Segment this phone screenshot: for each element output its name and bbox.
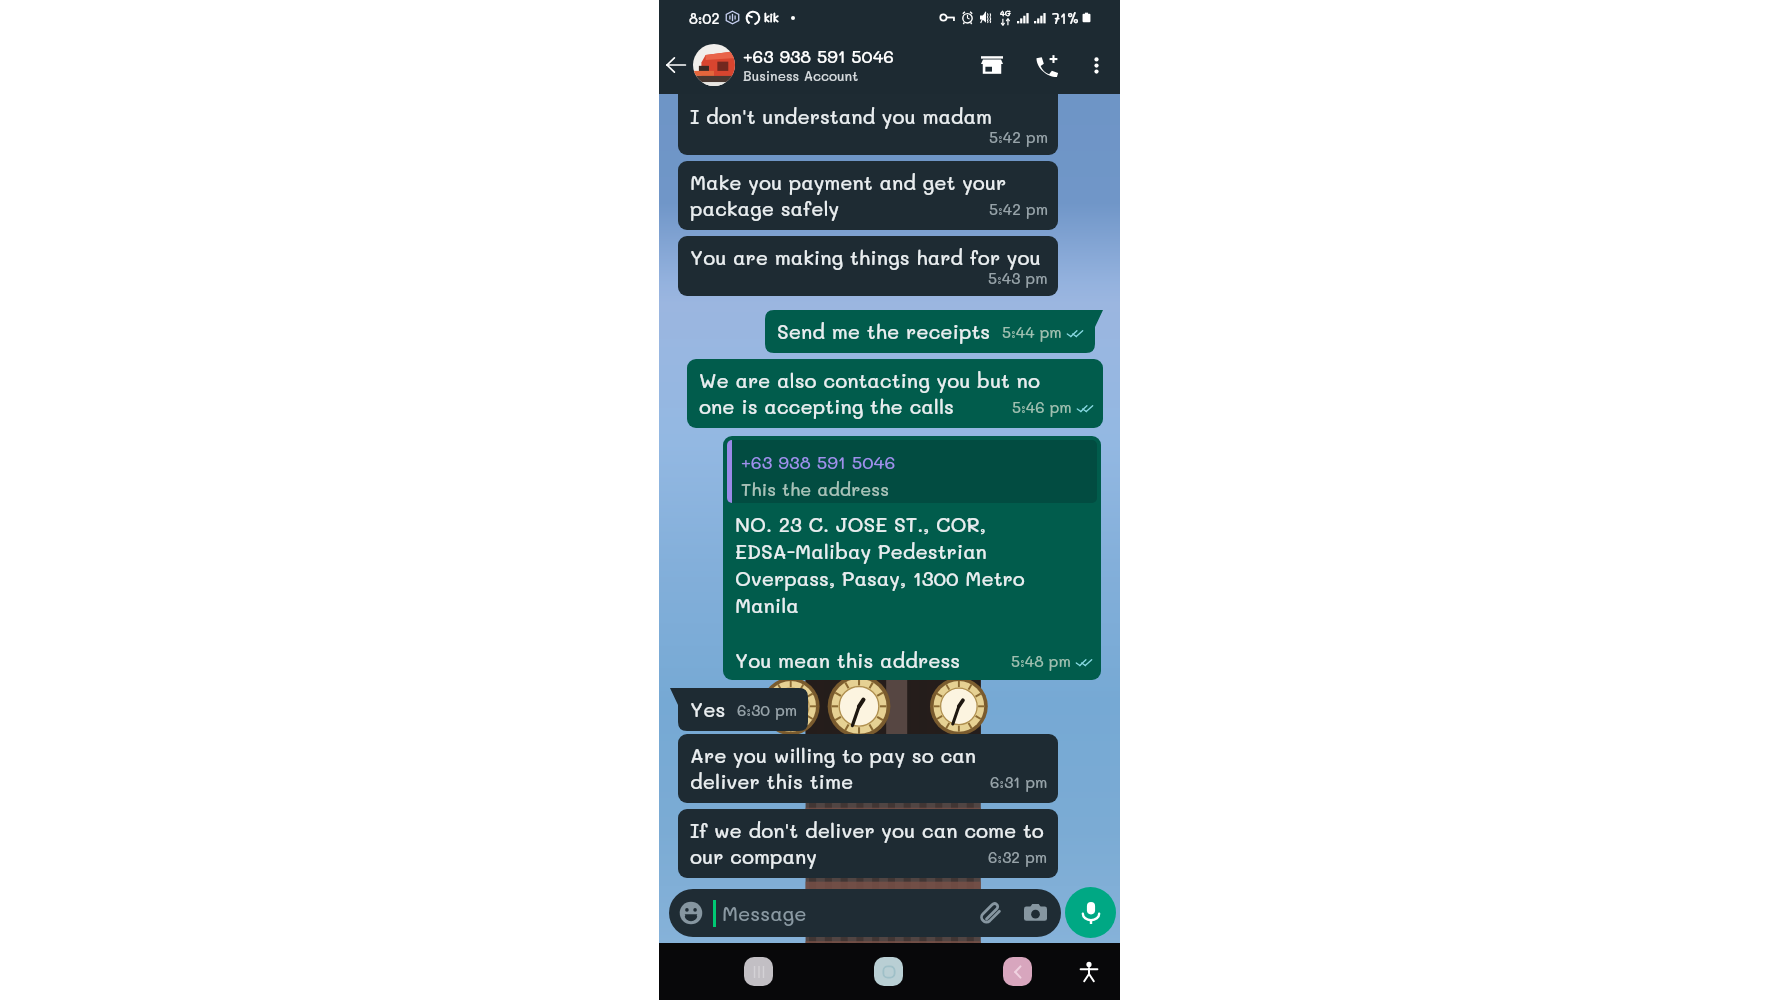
- button[interactable]: Add call: [1029, 47, 1065, 83]
- staticText: You are making things hard for you: [690, 244, 1041, 270]
- button[interactable]: You are making things hard for you: [678, 236, 1058, 296]
- button[interactable]: Accessibility: [1073, 956, 1105, 988]
- button[interactable]: If we don't deliver you can come to: [678, 809, 1058, 878]
- staticText: 71%: [1052, 9, 1080, 27]
- button[interactable]: I don't understand you madam: [678, 67, 1058, 155]
- staticText: 5:44 pm: [1002, 324, 1062, 341]
- button[interactable]: Voice message: [1065, 887, 1116, 938]
- button[interactable]: Message: [669, 889, 1061, 937]
- staticText: 5:43 pm: [988, 270, 1048, 287]
- staticText: You mean this address: [735, 647, 961, 673]
- staticText: deliver this time: [690, 768, 854, 794]
- button[interactable]: +63 938 591 5046: [723, 436, 1101, 680]
- button[interactable]: Are you willing to pay so can: [678, 734, 1058, 803]
- button[interactable]: Send me the receipts: [765, 310, 1103, 353]
- staticText: We are also contacting you but no: [699, 367, 1040, 393]
- staticText: If we don't deliver you can come to: [690, 817, 1044, 843]
- button[interactable]: Back: [1003, 957, 1032, 986]
- staticText: Make you payment and get your: [690, 169, 1007, 195]
- staticText: Yes: [690, 696, 726, 722]
- staticText: Manila: [735, 591, 799, 618]
- staticText: 6:32 pm: [988, 849, 1048, 866]
- button[interactable]: +63 938 591 5046: [743, 45, 974, 84]
- button[interactable]: Make you payment and get your: [678, 161, 1058, 230]
- staticText: one is accepting the calls: [699, 393, 954, 419]
- staticText: +63 938 591 5046: [741, 447, 896, 474]
- staticText: +63 938 591 5046: [743, 45, 894, 67]
- staticText: 4G: [1000, 9, 1011, 18]
- staticText: Message: [722, 900, 807, 926]
- button[interactable]: Home: [874, 957, 903, 986]
- button[interactable]: More options: [1084, 53, 1108, 77]
- staticText: our company: [690, 843, 817, 869]
- staticText: package safely: [690, 195, 840, 221]
- staticText: Overpass, Pasay, 1300 Metro: [735, 564, 1025, 591]
- staticText: 5:48 pm: [1011, 653, 1071, 670]
- staticText: This the address: [741, 474, 890, 501]
- staticText: Are you willing to pay so can: [690, 742, 976, 768]
- staticText: I don't understand you madam: [690, 103, 993, 129]
- staticText: 6:31 pm: [990, 774, 1048, 791]
- staticText: 6:30 pm: [737, 702, 798, 719]
- button[interactable]: Recents: [744, 957, 773, 986]
- staticText: 5:46 pm: [1012, 399, 1072, 416]
- staticText: 5:42 pm: [989, 129, 1048, 146]
- button[interactable]: Business profile: [974, 47, 1010, 83]
- staticText: Send me the receipts: [777, 318, 991, 344]
- button[interactable]: Yes: [670, 688, 808, 731]
- staticText: Business Account: [743, 67, 859, 84]
- button[interactable]: [693, 44, 735, 86]
- staticText: 5:42 pm: [989, 201, 1048, 218]
- staticText: NO. 23 C. JOSE ST., COR,: [735, 510, 986, 537]
- button[interactable]: We are also contacting you but no: [687, 359, 1103, 428]
- staticText: 8:02: [689, 9, 720, 27]
- staticText: EDSA-Malibay Pedestrian: [735, 537, 987, 564]
- button[interactable]: Back: [659, 48, 693, 82]
- staticText: kik: [764, 11, 779, 24]
